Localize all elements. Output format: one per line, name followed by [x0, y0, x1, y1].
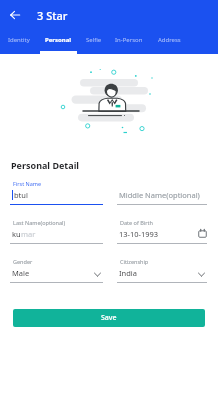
button[interactable]: Gender: [10, 258, 103, 283]
button[interactable]: Middle Name(optional): [117, 180, 207, 205]
staticText: Address: [158, 36, 181, 44]
staticText: Personal: [45, 36, 72, 44]
staticText: First Name: [13, 180, 42, 187]
staticText: Date of Birth: [120, 219, 153, 226]
staticText: Save: [101, 313, 117, 323]
staticText: 3 Star: [37, 8, 68, 23]
button[interactable]: Address: [149, 30, 190, 54]
button[interactable]: Selfie: [79, 30, 108, 54]
button[interactable]: Save: [13, 309, 205, 327]
staticText: Personal Detail: [11, 159, 80, 171]
staticText: India: [119, 268, 137, 278]
button[interactable]: In-Person: [108, 30, 149, 54]
staticText: Selfie: [86, 36, 102, 44]
staticText: btul: [14, 190, 28, 200]
staticText: mar: [21, 229, 36, 239]
staticText: Citizenship: [120, 258, 149, 265]
button[interactable]: Back: [8, 8, 22, 22]
button[interactable]: Personal: [37, 30, 80, 54]
staticText: Gender: [13, 258, 33, 265]
staticText: Last Name(optional): [13, 219, 66, 226]
button[interactable]: Citizenship: [117, 258, 207, 283]
button[interactable]: First Name: [10, 180, 103, 205]
button[interactable]: Date of Birth: [117, 219, 207, 244]
button[interactable]: Identity: [0, 30, 37, 54]
staticText: Middle Name(optional): [119, 190, 200, 200]
staticText: In-Person: [115, 36, 143, 44]
button[interactable]: Last Name(optional): [10, 219, 103, 244]
staticText: 13-10-1993: [119, 229, 159, 239]
staticText: Identity: [8, 36, 30, 44]
staticText: ku: [12, 229, 21, 239]
staticText: Male: [12, 268, 30, 278]
